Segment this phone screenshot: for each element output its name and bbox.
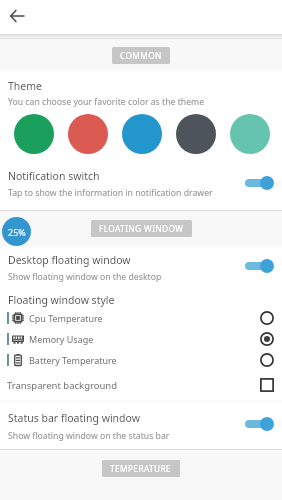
button[interactable]: FLOATING WINDOW (99, 223, 184, 234)
button[interactable]: Status bar floating window (0, 403, 282, 449)
staticText: Floating window style (8, 293, 115, 307)
staticText: Memory Usage (29, 333, 94, 345)
button[interactable] (14, 114, 54, 154)
staticText: Theme (8, 79, 42, 93)
button[interactable]: Desktop floating window (0, 246, 282, 288)
staticText: Show floating window on the status bar (8, 430, 170, 442)
button[interactable] (176, 114, 216, 154)
button[interactable]: Battery Temperature (0, 349, 282, 370)
staticText: Tap to show the information in notificat… (8, 187, 213, 199)
staticText: TEMPERATURE (110, 463, 172, 474)
staticText: Battery Temperature (29, 354, 117, 366)
staticText: FLOATING WINDOW (99, 223, 184, 234)
staticText: You can choose your favorite color as th… (8, 96, 205, 108)
button[interactable]: COMMON (120, 50, 162, 61)
button[interactable]: 25% (2, 217, 31, 246)
button[interactable]: TEMPERATURE (110, 463, 172, 474)
staticText: Cpu Temperature (29, 312, 103, 324)
button[interactable]: Cpu Temperature (0, 307, 282, 328)
staticText: COMMON (120, 50, 162, 61)
button[interactable] (68, 114, 108, 154)
staticText: Show floating window on the desktop (8, 271, 162, 283)
button[interactable]: Memory Usage (0, 328, 282, 349)
button[interactable]: Theme (0, 70, 282, 160)
button[interactable] (122, 114, 162, 154)
button[interactable] (230, 114, 270, 154)
button[interactable]: Transparent background (0, 370, 282, 400)
staticText: Status bar floating window (8, 411, 140, 425)
button[interactable]: Back (1, 0, 33, 32)
staticText: Desktop floating window (8, 253, 131, 267)
staticText: 25% (8, 226, 26, 238)
button[interactable]: Notification switch (0, 160, 282, 210)
staticText: Transparent background (7, 379, 118, 392)
staticText: Notification switch (8, 169, 100, 183)
